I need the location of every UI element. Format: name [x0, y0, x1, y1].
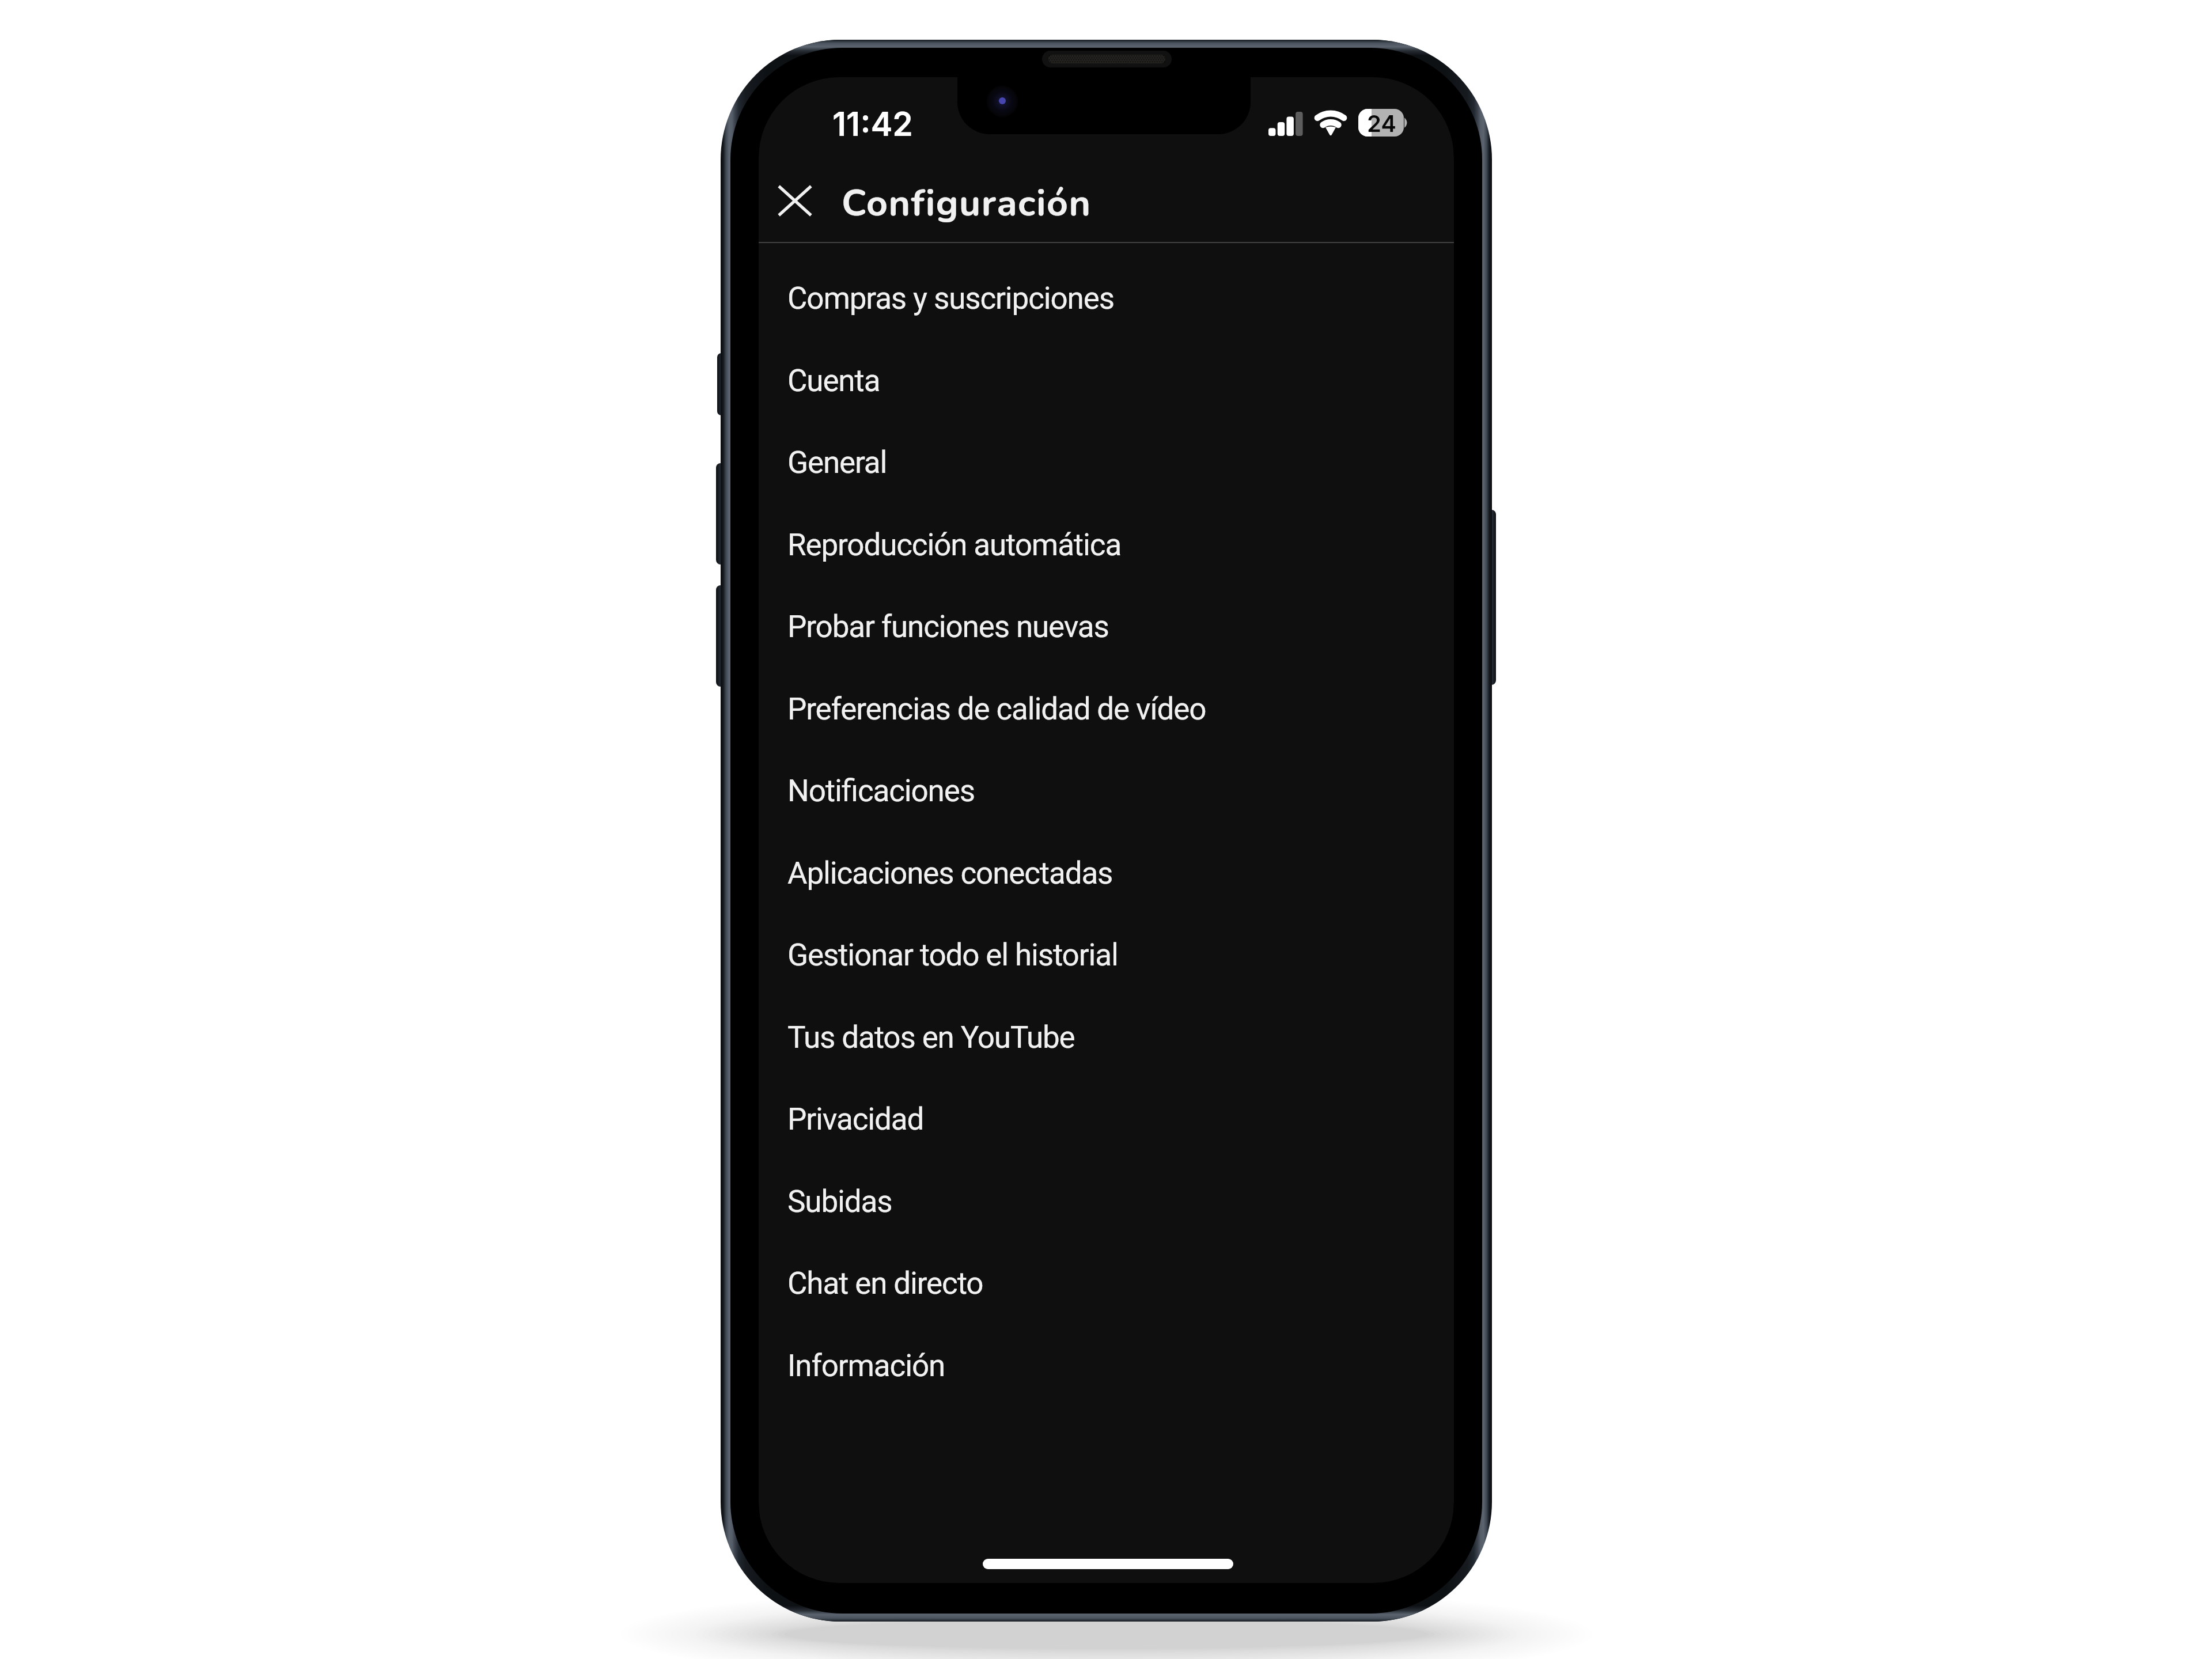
button[interactable]: Privacidad — [759, 1078, 1454, 1160]
staticText: 11:42 — [832, 104, 913, 144]
staticText: Notificaciones — [787, 773, 975, 809]
staticText: 24 — [1367, 109, 1396, 137]
staticText: Tus datos en YouTube — [787, 1020, 1075, 1055]
button[interactable]: Aplicaciones conectadas — [759, 832, 1454, 914]
button[interactable]: Preferencias de calidad de vídeo — [759, 668, 1454, 750]
button[interactable]: Cerrar — [759, 170, 822, 231]
button[interactable]: Tus datos en YouTube — [759, 997, 1454, 1078]
staticText: Reproducción automática — [787, 527, 1122, 563]
staticText: Probar funciones nuevas — [787, 609, 1109, 645]
staticText: Cuenta — [787, 363, 880, 399]
staticText: Preferencias de calidad de vídeo — [787, 691, 1206, 727]
button[interactable]: Gestionar todo el historial — [759, 914, 1454, 996]
button[interactable]: Cuenta — [759, 340, 1454, 422]
button[interactable]: Notificaciones — [759, 750, 1454, 832]
staticText: General — [787, 445, 887, 480]
button[interactable]: General — [759, 422, 1454, 503]
button[interactable]: Chat en directo — [759, 1243, 1454, 1324]
staticText: Subidas — [787, 1184, 892, 1219]
staticText: Gestionar todo el historial — [787, 937, 1118, 973]
staticText: Chat en directo — [787, 1266, 983, 1301]
button[interactable]: Compras y suscripciones — [759, 257, 1454, 339]
staticText: Información — [787, 1348, 945, 1384]
button[interactable]: Reproducción automática — [759, 504, 1454, 586]
staticText: Aplicaciones conectadas — [787, 855, 1113, 891]
staticText: Privacidad — [787, 1101, 924, 1137]
button[interactable]: Información — [759, 1325, 1454, 1407]
staticText: Compras y suscripciones — [787, 281, 1114, 316]
staticText: Configuración — [842, 178, 1092, 228]
button[interactable]: Probar funciones nuevas — [759, 586, 1454, 668]
button[interactable]: Subidas — [759, 1161, 1454, 1243]
